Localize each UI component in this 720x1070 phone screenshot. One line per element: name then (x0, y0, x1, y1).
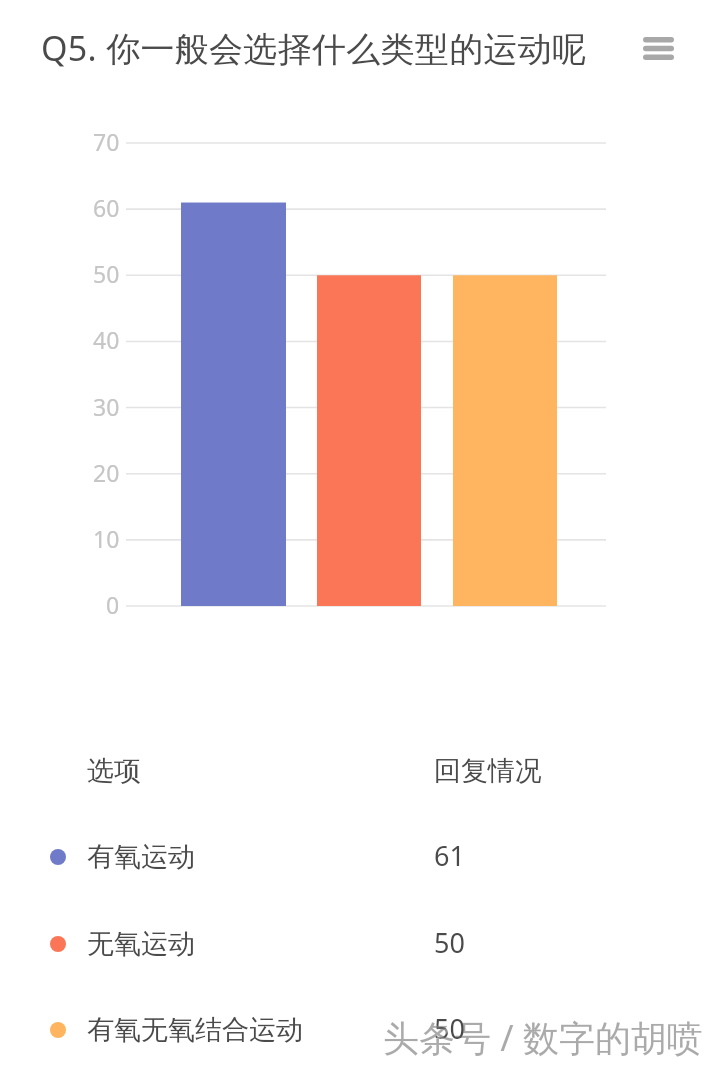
staticText: 50 (434, 1010, 465, 1047)
staticText: 70 (93, 126, 120, 157)
staticText: 40 (93, 324, 120, 355)
button[interactable]: Menu (626, 18, 690, 78)
staticText: 61 (434, 837, 465, 874)
button[interactable]: 有氧无氧结合运动 (0, 1000, 720, 1060)
staticText: Q5. 你一般会选择什么类型的运动呢 (41, 25, 587, 71)
staticText: 无氧运动 (87, 927, 195, 961)
staticText: 选项 (87, 754, 141, 788)
button[interactable]: 选项 (87, 754, 141, 788)
staticText: 有氧无氧结合运动 (87, 1013, 303, 1047)
staticText: 头条号 / 数字的胡喷 (386, 1016, 707, 1065)
staticText: 30 (93, 391, 120, 422)
staticText: 50 (93, 258, 120, 289)
staticText: 20 (93, 457, 120, 488)
button[interactable]: 回复情况 (434, 754, 542, 788)
staticText: 50 (434, 924, 465, 961)
staticText: 回复情况 (434, 754, 542, 788)
staticText: 60 (93, 192, 120, 223)
staticText: 有氧运动 (87, 840, 195, 874)
staticText: 10 (93, 523, 120, 554)
button[interactable]: 无氧运动 (0, 914, 720, 974)
staticText: 0 (106, 589, 120, 620)
button[interactable]: 有氧运动 (0, 827, 720, 887)
staticText: 头条号 / 数字的胡喷 (383, 1013, 704, 1062)
